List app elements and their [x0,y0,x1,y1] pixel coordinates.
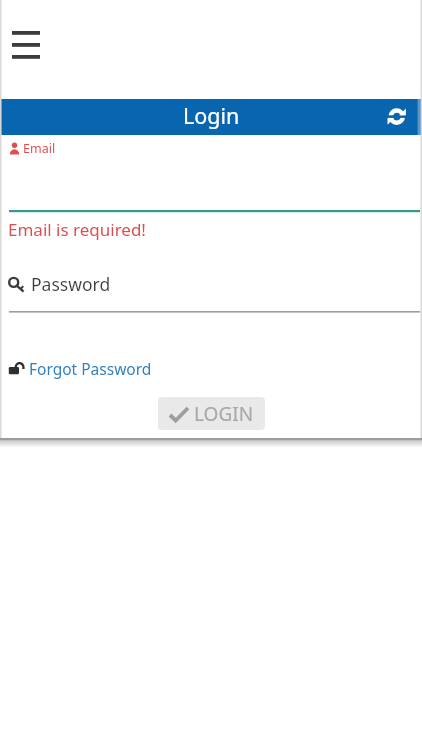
button[interactable]: LOGIN [158,397,265,430]
staticText: Login [183,101,240,130]
staticText: Email [23,140,56,157]
staticText: Forgot Password [29,358,152,379]
staticText: LOGIN [194,401,254,427]
button[interactable] [0,138,422,212]
staticText: Email is required! [8,218,146,241]
staticText: Password [31,272,111,296]
button[interactable] [8,25,44,65]
button[interactable] [0,262,422,313]
button[interactable]: Forgot Password [6,356,158,378]
button[interactable] [383,102,413,132]
